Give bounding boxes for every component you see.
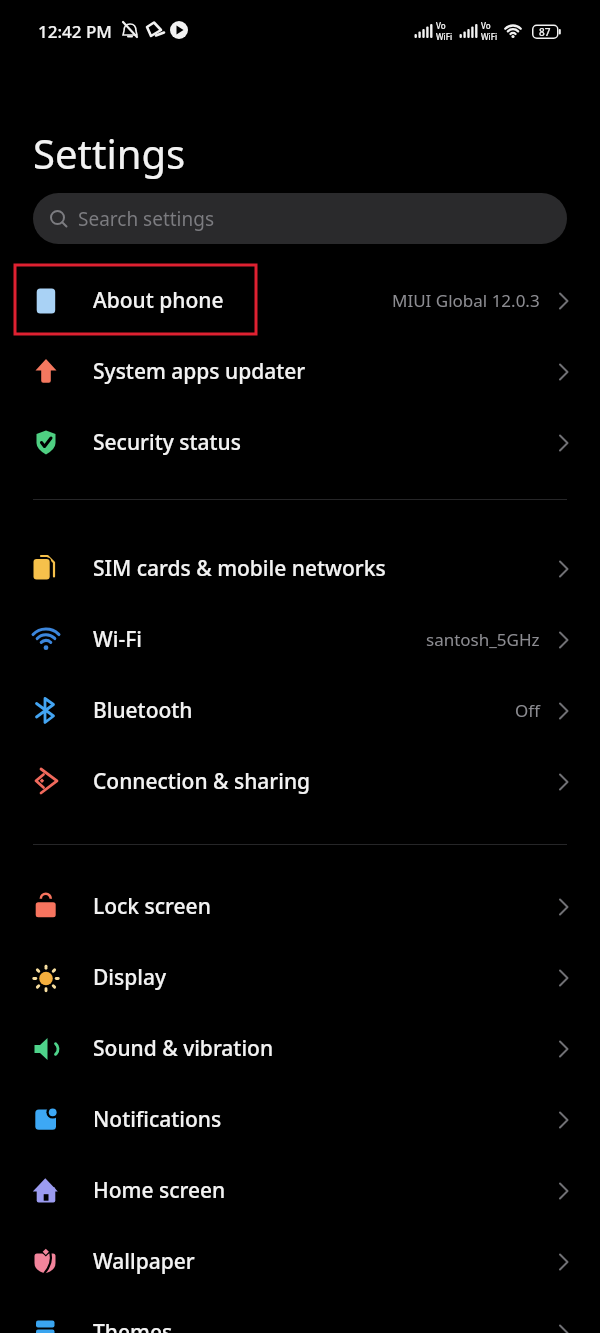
staticText: santosh_5GHz — [426, 628, 540, 651]
button[interactable]: Security status — [0, 407, 600, 478]
staticText: Settings — [33, 126, 186, 180]
button[interactable]: Home screen — [0, 1155, 600, 1226]
button[interactable]: Display — [0, 942, 600, 1013]
staticText: Vo — [481, 20, 491, 31]
button[interactable]: About phone — [0, 265, 600, 336]
staticText: Bluetooth — [93, 696, 193, 725]
button[interactable]: Bluetooth — [0, 675, 600, 746]
staticText: Display — [93, 963, 167, 992]
staticText: Lock screen — [93, 892, 211, 921]
staticText: Sound & vibration — [93, 1034, 274, 1063]
staticText: Vo — [436, 20, 446, 31]
staticText: SIM cards & mobile networks — [93, 554, 386, 583]
staticText: WiFi — [481, 31, 498, 42]
staticText: MIUI Global 12.0.3 — [392, 289, 540, 312]
staticText: Notifications — [93, 1105, 222, 1134]
staticText: Off — [515, 699, 540, 722]
button[interactable]: SIM cards & mobile networks — [0, 533, 600, 604]
button[interactable]: Themes — [0, 1297, 600, 1333]
staticText: About phone — [93, 286, 224, 315]
button[interactable]: Lock screen — [0, 871, 600, 942]
staticText: 87 — [539, 25, 551, 39]
staticText: WiFi — [436, 31, 453, 42]
button[interactable]: Wi-Fi — [0, 604, 600, 675]
staticText: Home screen — [93, 1176, 226, 1205]
staticText: Themes — [93, 1318, 173, 1333]
button[interactable]: Search settings — [33, 193, 567, 244]
staticText: System apps updater — [93, 357, 306, 386]
staticText: Search settings — [78, 206, 215, 232]
staticText: 12:42 PM — [38, 20, 112, 43]
button[interactable]: Notifications — [0, 1084, 600, 1155]
staticText: Security status — [93, 428, 241, 457]
staticText: Connection & sharing — [93, 767, 311, 796]
button[interactable]: Wallpaper — [0, 1226, 600, 1297]
staticText: Wi-Fi — [93, 625, 142, 654]
staticText: Wallpaper — [93, 1247, 195, 1276]
button[interactable]: Connection & sharing — [0, 746, 600, 817]
button[interactable]: System apps updater — [0, 336, 600, 407]
button[interactable]: Sound & vibration — [0, 1013, 600, 1084]
